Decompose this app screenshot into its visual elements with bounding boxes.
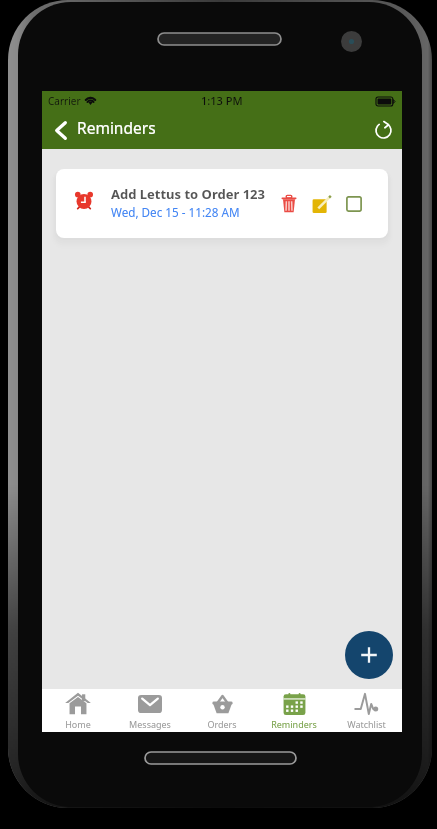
button[interactable]: Mark complete (341, 191, 367, 217)
button[interactable]: Add reminder (345, 631, 393, 679)
staticText: Carrier (48, 94, 81, 108)
button[interactable]: Delete (276, 191, 302, 217)
staticText: Watchlist (347, 718, 386, 730)
staticText: Add Lettus to Order 123 (111, 185, 265, 203)
staticText: Reminders (77, 117, 156, 138)
button[interactable]: Orders (186, 689, 258, 732)
staticText: Messages (129, 718, 171, 730)
button[interactable]: Home (42, 689, 114, 732)
button[interactable]: Messages (114, 689, 186, 732)
button[interactable]: Refresh (364, 112, 402, 149)
staticText: 1:13 PM (201, 93, 243, 108)
button[interactable]: Edit (308, 191, 334, 217)
button[interactable]: Add Lettus to Order 123 (56, 169, 388, 238)
staticText: Wed, Dec 15 - 11:28 AM (111, 204, 240, 220)
staticText: Reminders (271, 718, 317, 730)
staticText: Home (65, 718, 91, 730)
staticText: Orders (207, 718, 237, 730)
button[interactable]: Reminders (258, 689, 330, 732)
button[interactable]: Watchlist (330, 689, 402, 732)
button[interactable]: Reminders (42, 112, 166, 149)
